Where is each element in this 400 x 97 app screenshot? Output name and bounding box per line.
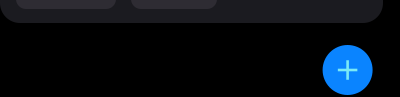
button[interactable]: Second filter xyxy=(131,0,217,9)
button[interactable]: First filter xyxy=(16,0,116,9)
button[interactable]: Add xyxy=(323,45,373,95)
